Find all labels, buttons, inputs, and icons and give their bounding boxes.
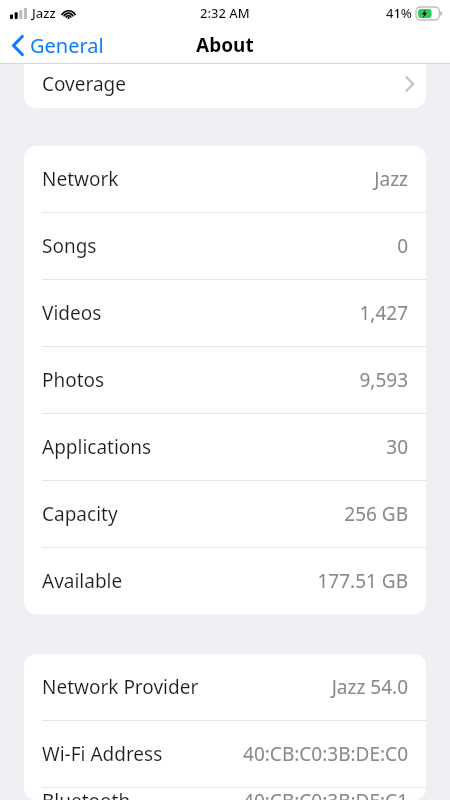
staticText: 30 — [386, 434, 408, 460]
staticText: 40:CB:C0:3B:DE:C1 — [243, 788, 408, 800]
button[interactable]: Songs — [24, 213, 426, 279]
button[interactable]: Available — [24, 548, 426, 614]
button[interactable]: Photos — [24, 347, 426, 413]
staticText: 41% — [386, 4, 412, 22]
button[interactable]: Videos — [24, 280, 426, 346]
staticText: General — [30, 32, 104, 59]
staticText: Bluetooth — [42, 788, 131, 800]
button[interactable]: Bluetooth — [24, 788, 426, 800]
staticText: 9,593 — [359, 367, 408, 393]
staticText: Wi-Fi Address — [42, 741, 163, 767]
button[interactable]: General — [0, 28, 114, 63]
staticText: 256 GB — [344, 501, 408, 527]
staticText: 1,427 — [359, 300, 408, 326]
button[interactable]: Network Provider — [24, 654, 426, 720]
staticText: 177.51 GB — [317, 568, 408, 594]
staticText: Coverage — [42, 71, 127, 97]
staticText: About — [196, 32, 254, 58]
staticText: Available — [42, 568, 123, 594]
staticText: Videos — [42, 300, 102, 326]
staticText: Network — [42, 166, 119, 192]
staticText: Jazz — [374, 166, 408, 192]
button[interactable]: Capacity — [24, 481, 426, 547]
other: Open Coverage — [398, 73, 420, 95]
button[interactable]: Network — [24, 146, 426, 212]
staticText: 2:32 AM — [200, 4, 250, 22]
staticText: Jazz — [32, 4, 56, 22]
button[interactable]: Coverage — [24, 64, 426, 108]
staticText: Jazz 54.0 — [331, 674, 408, 700]
staticText: Photos — [42, 367, 105, 393]
staticText: Network Provider — [42, 674, 199, 700]
staticText: Capacity — [42, 501, 118, 527]
staticText: Applications — [42, 434, 152, 460]
button[interactable]: Wi-Fi Address — [24, 721, 426, 787]
staticText: Songs — [42, 233, 97, 259]
staticText: 40:CB:C0:3B:DE:C0 — [243, 741, 408, 767]
button[interactable]: Applications — [24, 414, 426, 480]
staticText: 0 — [397, 233, 408, 259]
